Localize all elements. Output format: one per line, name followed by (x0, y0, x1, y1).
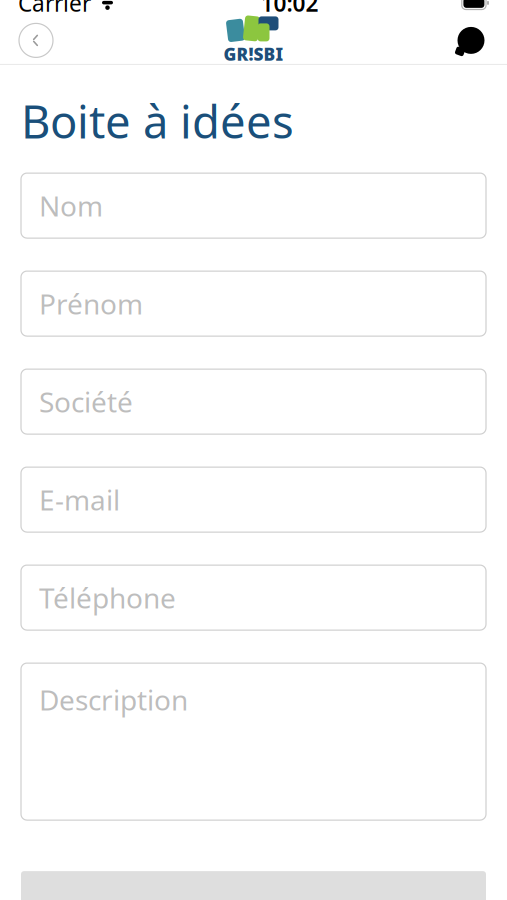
staticText: Nom (39, 187, 103, 224)
button[interactable]: Back (14, 18, 58, 62)
staticText: 10:02 (260, 0, 318, 18)
staticText: Prénom (39, 285, 143, 322)
button[interactable]: Chat (449, 18, 493, 62)
staticText: Boite à idées (21, 91, 294, 151)
staticText: Carrier (18, 0, 91, 18)
staticText: Description (39, 681, 188, 718)
staticText: E-mail (39, 481, 120, 518)
staticText: GR!SBI (223, 42, 283, 65)
staticText: Téléphone (39, 579, 176, 616)
staticText: Société (39, 383, 133, 420)
